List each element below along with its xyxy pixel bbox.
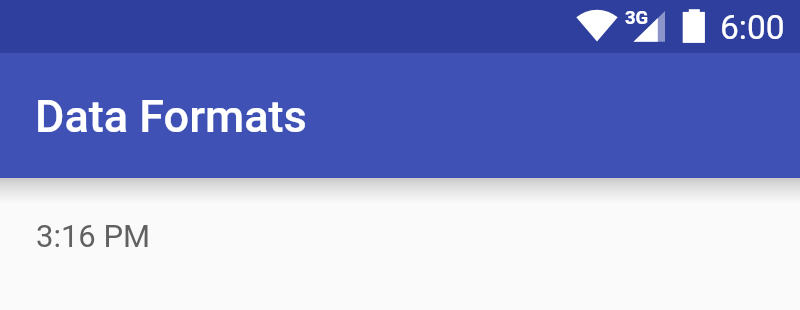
button[interactable]: Data Formats <box>0 53 800 178</box>
other: Battery full <box>680 7 708 45</box>
other: 3G mobile signal <box>624 6 668 46</box>
staticText: 6:00 <box>720 8 785 47</box>
button[interactable]: 3:16 PM <box>0 178 800 248</box>
staticText: Data Formats <box>35 90 307 143</box>
other: Wi-Fi connected <box>575 8 619 44</box>
staticText: 3:16 PM <box>36 218 151 254</box>
staticText: 3G <box>625 7 649 29</box>
